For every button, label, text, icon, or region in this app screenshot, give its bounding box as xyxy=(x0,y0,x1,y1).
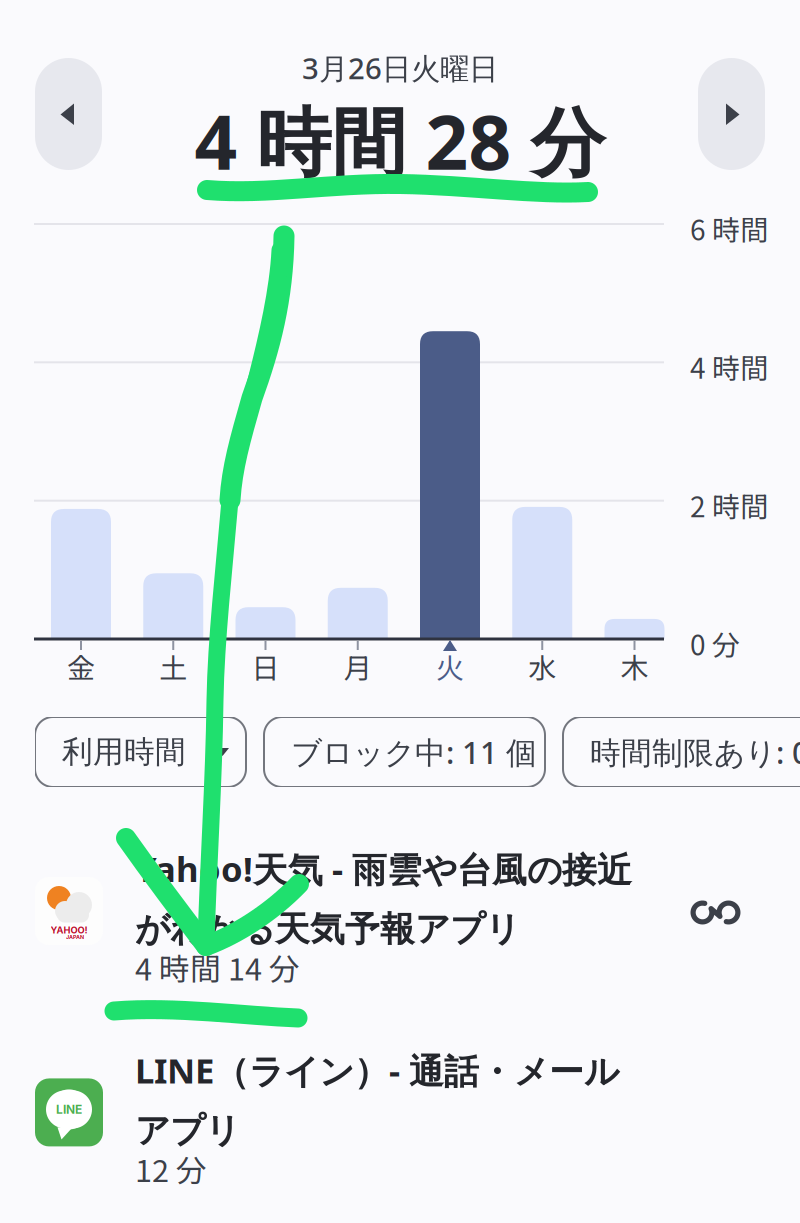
button[interactable]: Next day xyxy=(698,58,765,170)
button[interactable]: LINE xyxy=(0,1046,800,1191)
button[interactable]: YAHOO! xyxy=(0,845,800,989)
staticText: 3月26日火曜日 xyxy=(302,48,498,88)
staticText: 金 xyxy=(67,646,95,686)
staticText: YAHOO! xyxy=(50,924,87,936)
staticText: 4 時間 28 分 xyxy=(194,90,605,192)
staticText: LINE xyxy=(56,1102,82,1117)
staticText: アプリ xyxy=(135,1109,240,1152)
staticText: 火 xyxy=(436,646,464,686)
staticText: 0 分 xyxy=(690,623,740,663)
staticText: 4 時間 xyxy=(690,346,768,387)
staticText: 木 xyxy=(620,646,648,686)
staticText: LINE（ライン）- 通話・メール xyxy=(135,1046,619,1094)
staticText: ブロック中: 11 個 xyxy=(291,731,537,773)
button[interactable]: Previous day xyxy=(35,58,102,170)
staticText: 土 xyxy=(159,646,187,686)
staticText: JAPAN xyxy=(66,934,84,940)
button[interactable]: 利用時間 xyxy=(35,717,246,787)
staticText: 月 xyxy=(344,646,372,686)
staticText: がわかる天気予報アプリ xyxy=(135,907,520,951)
staticText: 日 xyxy=(251,646,279,686)
staticText: 2 時間 xyxy=(690,485,768,525)
staticText: 利用時間 xyxy=(62,733,186,771)
staticText: 水 xyxy=(528,646,556,686)
staticText: 12 分 xyxy=(135,1146,207,1191)
staticText: Yahoo!天気 - 雨雲や台風の接近 xyxy=(135,845,632,892)
button[interactable]: ブロック中: 11 個 xyxy=(264,717,545,787)
staticText: 6 時間 xyxy=(690,208,768,248)
staticText: 時間制限あり: 0 個 xyxy=(590,731,800,773)
button[interactable]: 時間制限あり: 0 個 xyxy=(563,717,800,787)
staticText: 4 時間 14 分 xyxy=(135,945,300,989)
